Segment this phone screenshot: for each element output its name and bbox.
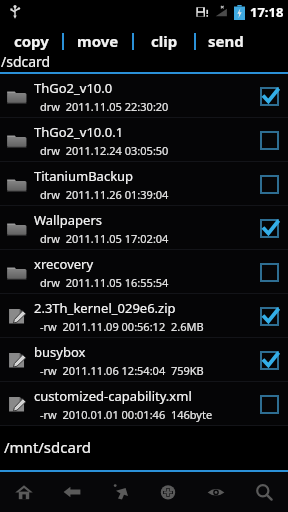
staticText: drw 2011.11.05 22:30:20 [40, 99, 169, 114]
button[interactable]: Home [0, 472, 48, 512]
button[interactable]: Add [144, 472, 192, 512]
staticText: TitaniumBackup [34, 167, 134, 185]
staticText: copy [14, 31, 49, 51]
button[interactable]: Search [240, 472, 288, 512]
button[interactable]: Select ThGo2_v10.0 [250, 74, 288, 118]
staticText: customized-capability.xml [34, 387, 192, 405]
staticText: ThGo2_v10.0 [34, 79, 113, 97]
button[interactable]: clip [134, 26, 194, 56]
button[interactable]: Select customized-capability.xml [250, 382, 288, 426]
staticText: -rw 2011.11.09 00:56:12 2.6MB [40, 319, 204, 334]
button[interactable]: Select Wallpapers [250, 206, 288, 250]
staticText: drw 2011.11.05 16:55:54 [40, 275, 169, 290]
button[interactable]: Select [96, 472, 144, 512]
staticText: 17:18 [250, 3, 284, 21]
staticText: drw 2011.11.26 01:39:04 [40, 187, 169, 202]
button[interactable]: Back [48, 472, 96, 512]
staticText: clip [151, 31, 178, 51]
staticText: send [208, 31, 244, 51]
staticText: xrecovery [34, 255, 94, 273]
button[interactable]: ThGo2_v10.0.1 [0, 118, 288, 162]
staticText: Wallpapers [34, 211, 103, 229]
button[interactable]: busybox [0, 338, 288, 382]
button[interactable]: Select ThGo2_v10.0.1 [250, 118, 288, 162]
button[interactable]: customized-capability.xml [0, 382, 288, 426]
button[interactable]: Select xrecovery [250, 250, 288, 294]
button[interactable]: TitaniumBackup [0, 162, 288, 206]
staticText: ThGo2_v10.0.1 [34, 123, 124, 141]
button[interactable]: Wallpapers [0, 206, 288, 250]
staticText: /sdcard [1, 52, 51, 71]
staticText: drw 2011.12.24 03:05:50 [40, 143, 169, 158]
staticText: busybox [34, 343, 86, 361]
button[interactable]: Select TitaniumBackup [250, 162, 288, 206]
staticText: drw 2011.11.05 17:02:04 [40, 231, 169, 246]
button[interactable]: send [196, 26, 256, 56]
staticText: move [77, 31, 119, 51]
staticText: /mnt/sdcard [4, 437, 92, 457]
button[interactable]: ThGo2_v10.0 [0, 74, 288, 118]
button[interactable]: Select busybox [250, 338, 288, 382]
button[interactable]: 2.3Th_kernel_029e6.zip [0, 294, 288, 338]
button[interactable]: View [192, 472, 240, 512]
staticText: -rw 2010.01.01 00:01:46 146byte [40, 407, 213, 422]
button[interactable]: copy [0, 26, 62, 56]
staticText: 2.3Th_kernel_029e6.zip [34, 299, 176, 317]
button[interactable]: xrecovery [0, 250, 288, 294]
button[interactable]: move [64, 26, 132, 56]
button[interactable]: Select 2.3Th_kernel_029e6.zip [250, 294, 288, 338]
staticText: -rw 2011.11.06 12:54:04 759KB [40, 363, 204, 378]
